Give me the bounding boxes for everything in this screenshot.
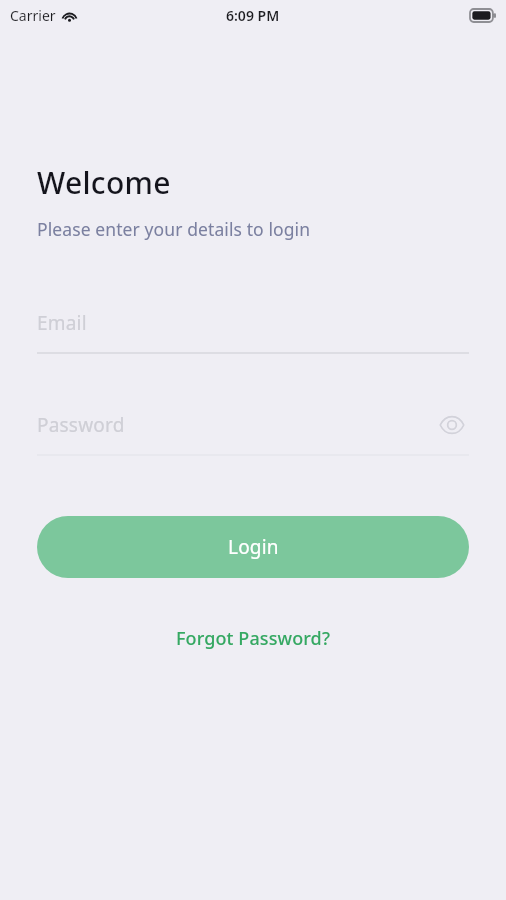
- button[interactable]: Forgot Password?: [170, 622, 337, 655]
- staticText: Login: [228, 534, 279, 560]
- staticText: Please enter your details to login: [37, 217, 311, 241]
- staticText: Forgot Password?: [176, 626, 331, 651]
- staticText: Email: [37, 310, 87, 336]
- staticText: Welcome: [37, 162, 171, 203]
- staticText: 6:09 PM: [226, 6, 280, 25]
- staticText: Carrier: [10, 6, 56, 25]
- button[interactable]: Email: [37, 305, 469, 341]
- button[interactable]: Show password: [435, 408, 469, 442]
- button[interactable]: Login: [37, 516, 469, 578]
- staticText: Password: [37, 412, 125, 438]
- button[interactable]: Password: [37, 407, 469, 443]
